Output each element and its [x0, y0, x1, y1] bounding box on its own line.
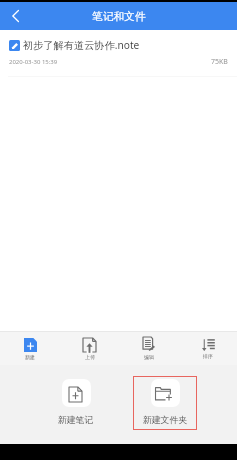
button[interactable]: 新建文件夹 [131, 373, 199, 430]
staticText: 上传 [85, 354, 95, 360]
staticText: 排序 [203, 353, 213, 359]
button[interactable]: 初步了解有道云协作.note [0, 30, 237, 77]
button[interactable]: 新建 [0, 332, 60, 365]
button[interactable]: 新建笔记 [42, 373, 110, 430]
staticText: 新建 [25, 354, 35, 360]
staticText: 新建文件夹 [143, 415, 187, 426]
button[interactable]: Back [0, 2, 30, 30]
button[interactable]: 上传 [60, 332, 119, 365]
staticText: 新建笔记 [58, 415, 94, 426]
staticText: 初步了解有道云协作.note [23, 38, 140, 52]
staticText: 75KB [211, 57, 228, 67]
staticText: 2020-03-30 15:39 [9, 58, 58, 66]
button[interactable]: 排序 [178, 332, 237, 365]
button[interactable]: 编辑 [119, 332, 178, 365]
staticText: 笔记和文件 [92, 10, 146, 23]
staticText: 编辑 [144, 354, 154, 360]
